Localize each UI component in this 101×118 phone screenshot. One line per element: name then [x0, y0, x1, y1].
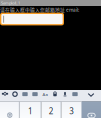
button[interactable]: Recent: [10, 90, 20, 101]
button[interactable]: Voice input: [60, 90, 70, 101]
button[interactable]: Input method settings: [0, 90, 10, 101]
staticText: 2: [49, 106, 54, 116]
button[interactable]: Delete: [82, 101, 101, 118]
staticText: Sample4_1: [1, 0, 20, 6]
staticText: 3: [69, 106, 74, 116]
button[interactable]: Handwriting: [50, 90, 60, 101]
button[interactable]: Stickers: [30, 90, 40, 101]
button[interactable]: 1: [19, 101, 41, 118]
button[interactable]: Switch keyboard: [0, 101, 19, 118]
button[interactable]: Translate: [40, 90, 50, 101]
button[interactable]: 3: [61, 101, 82, 118]
button[interactable]: Clipboard: [20, 90, 30, 101]
staticText: Aa: [42, 91, 47, 97]
staticText: 请在输入框中输入您邮箱地址 email:: [0, 6, 79, 13]
button[interactable]: Hide keyboard: [85, 90, 97, 101]
button[interactable]: More tools: [70, 90, 80, 101]
staticText: 1: [28, 106, 33, 116]
button[interactable]: 2: [41, 101, 61, 118]
